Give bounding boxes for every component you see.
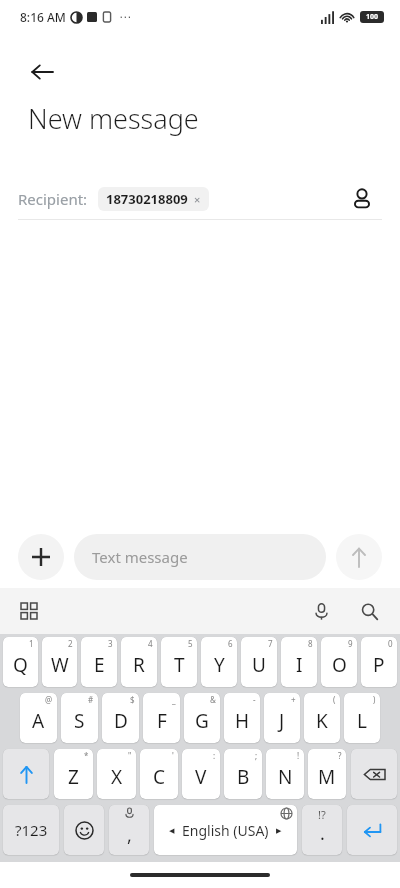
staticText: Q [13, 652, 28, 678]
button[interactable]: 18730218809 [98, 187, 209, 211]
staticText: W [51, 652, 69, 678]
button[interactable]: : [182, 749, 220, 799]
button[interactable]: * [54, 749, 93, 799]
staticText: 4 [148, 638, 153, 649]
staticText: $ [130, 694, 135, 705]
button[interactable]: Search [352, 594, 386, 628]
staticText: N [278, 764, 293, 790]
staticText: H [235, 708, 250, 734]
button[interactable]: - [224, 693, 260, 743]
staticText: ( [333, 694, 336, 705]
staticText: + [291, 694, 296, 705]
button[interactable]: 8 [281, 637, 317, 687]
staticText: G [195, 708, 209, 734]
staticText: _ [172, 694, 176, 705]
button[interactable]: Shift [3, 749, 49, 799]
button[interactable]: ) [344, 693, 380, 743]
staticText: Text message [92, 547, 188, 567]
staticText: S [74, 708, 85, 734]
button[interactable]: ◂ [154, 805, 297, 855]
button[interactable]: Send [336, 534, 382, 580]
staticText: @ [45, 694, 53, 705]
button[interactable]: " [97, 749, 136, 799]
staticText: B [237, 764, 250, 790]
staticText: Y [214, 652, 225, 678]
staticText: X [111, 764, 123, 790]
staticText: - [253, 694, 256, 705]
staticText: J [279, 708, 285, 734]
staticText: F [157, 708, 167, 734]
button[interactable]: 9 [321, 637, 357, 687]
staticText: * [84, 750, 89, 761]
staticText: ' [172, 750, 174, 761]
button[interactable]: !? [302, 805, 342, 855]
button[interactable]: 6 [201, 637, 237, 687]
button[interactable]: Enter [347, 805, 397, 855]
staticText: English (USA) [182, 821, 269, 840]
button[interactable]: Menu [12, 594, 46, 628]
button[interactable]: Contacts [342, 179, 382, 219]
staticText: ! [297, 750, 300, 761]
staticText: ?123 [15, 820, 48, 840]
button[interactable]: & [184, 693, 220, 743]
button[interactable]: $ [102, 693, 139, 743]
staticText: E [94, 652, 105, 678]
staticText: ; [255, 750, 258, 761]
staticText: C [153, 764, 166, 790]
staticText: R [133, 652, 145, 678]
staticText: × [194, 192, 201, 207]
staticText: 3 [108, 638, 113, 649]
button[interactable]: _ [143, 693, 180, 743]
button[interactable]: 0 [361, 637, 397, 687]
staticText: A [32, 708, 45, 734]
button[interactable]: 5 [161, 637, 197, 687]
staticText: T [174, 652, 185, 678]
staticText: Z [68, 764, 79, 790]
button[interactable]: Voice input [304, 594, 338, 628]
staticText: ▸ [276, 824, 282, 837]
button[interactable]: + [264, 693, 300, 743]
button[interactable]: ! [266, 749, 304, 799]
staticText: L [357, 708, 367, 734]
staticText: 8:16 AM [20, 9, 66, 25]
button[interactable]: Attach [18, 534, 64, 580]
staticText: D [114, 708, 128, 734]
staticText: ) [373, 694, 376, 705]
staticText: , [127, 823, 132, 848]
staticText: V [195, 764, 207, 790]
button[interactable]: , [109, 805, 149, 855]
button[interactable]: 4 [121, 637, 157, 687]
button[interactable]: 7 [241, 637, 277, 687]
button[interactable]: 3 [81, 637, 117, 687]
button[interactable]: ( [304, 693, 340, 743]
staticText: ◂ [169, 824, 175, 837]
staticText: ? [338, 750, 342, 761]
staticText: 9 [348, 638, 353, 649]
button[interactable]: ?123 [3, 805, 59, 855]
button[interactable]: Emoji [64, 805, 104, 855]
button[interactable]: ; [224, 749, 262, 799]
button[interactable]: 2 [42, 637, 77, 687]
staticText: 100 [366, 12, 379, 22]
button[interactable]: @ [20, 693, 57, 743]
button[interactable]: Text message [74, 534, 326, 580]
button[interactable]: ' [140, 749, 178, 799]
button[interactable]: 1 [3, 637, 38, 687]
staticText: 1 [29, 638, 34, 649]
staticText: P [373, 652, 385, 678]
staticText: & [210, 694, 216, 705]
staticText: M [318, 764, 336, 790]
staticText: ⋯ [119, 10, 131, 24]
staticText: I [296, 652, 303, 678]
staticText: K [316, 708, 328, 734]
button[interactable]: Backspace [351, 749, 397, 799]
staticText: O [332, 652, 347, 678]
staticText: U [252, 652, 266, 678]
button[interactable]: ? [308, 749, 346, 799]
button[interactable]: Back [18, 48, 66, 96]
staticText: 5 [188, 638, 193, 649]
staticText: 18730218809 [106, 190, 188, 208]
staticText: : [213, 750, 216, 761]
staticText: 6 [228, 638, 233, 649]
button[interactable]: # [61, 693, 98, 743]
